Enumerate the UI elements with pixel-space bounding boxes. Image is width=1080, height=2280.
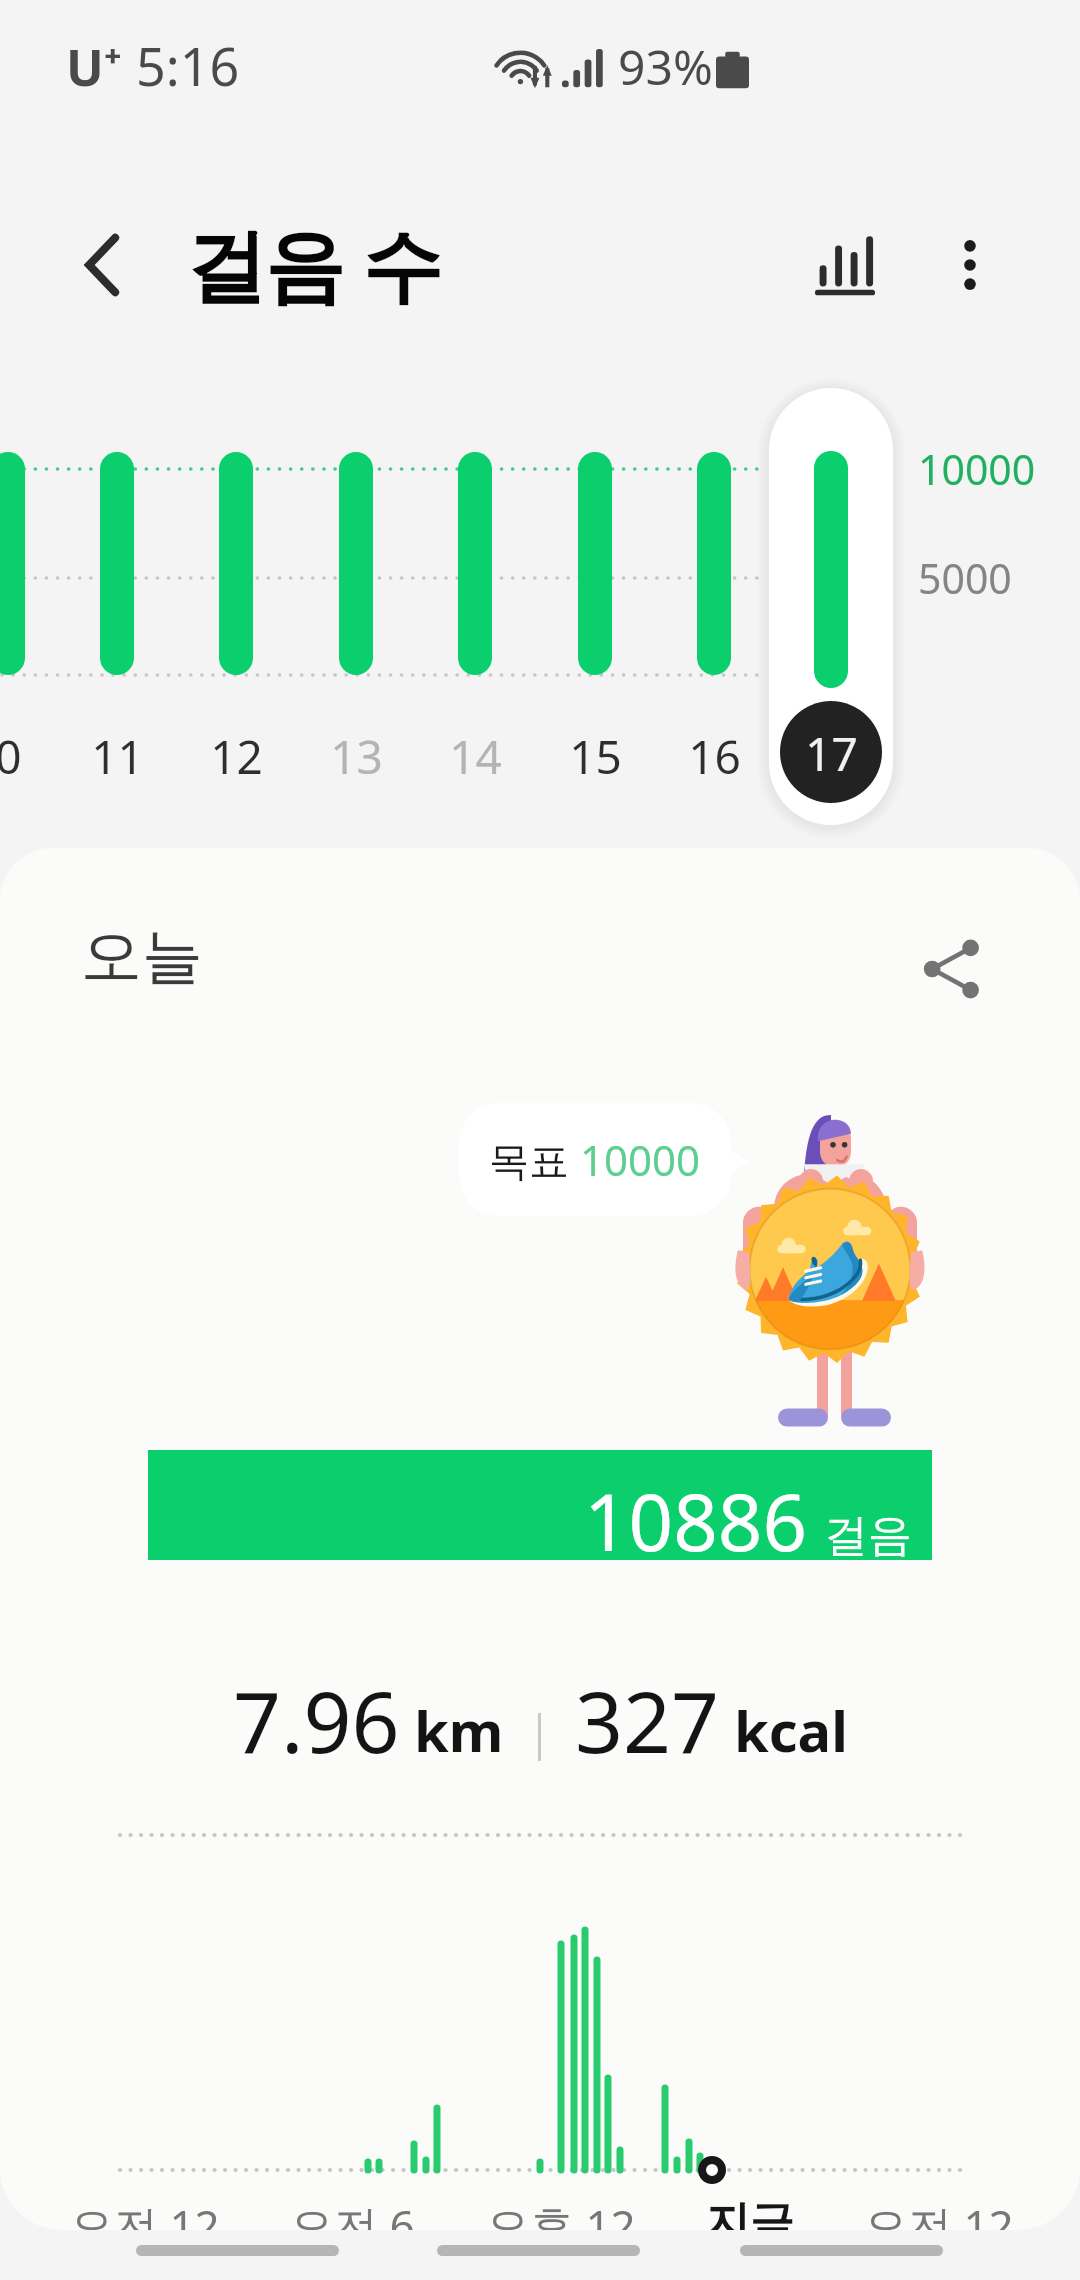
button[interactable]: 0 xyxy=(0,440,64,790)
staticText: 93% xyxy=(618,34,713,99)
staticText: 오전 12 xyxy=(70,2195,220,2230)
staticText: 0 xyxy=(0,725,22,788)
staticText: 지금 xyxy=(706,2195,794,2230)
staticText: 오전 6 xyxy=(290,2195,415,2230)
staticText: 17 xyxy=(805,722,858,785)
staticText: 14 xyxy=(449,725,502,788)
button[interactable]: 15 xyxy=(539,440,651,790)
button[interactable]: 11 xyxy=(61,440,173,790)
staticText: kcal xyxy=(734,1692,848,1768)
staticText: U⁺ xyxy=(66,33,122,101)
button[interactable]: Home xyxy=(407,2220,670,2280)
staticText: 목표 xyxy=(489,1132,580,1187)
button[interactable]: 17 xyxy=(769,388,893,825)
button[interactable]: Back xyxy=(710,2220,973,2280)
button[interactable]: 14 xyxy=(419,440,531,790)
staticText: 걸음 수 xyxy=(186,208,441,317)
staticText: 오늘 xyxy=(81,918,203,995)
staticText: 15 xyxy=(569,725,622,788)
button[interactable]: 16 xyxy=(658,440,770,790)
staticText: 오후 12 xyxy=(486,2195,636,2230)
staticText: 7.96 xyxy=(233,1663,400,1777)
button[interactable]: Chart view xyxy=(786,204,906,324)
staticText: 5000 xyxy=(918,550,1012,606)
staticText: 5:16 xyxy=(136,30,240,101)
button[interactable]: 13 xyxy=(300,440,412,790)
staticText: 10000 xyxy=(580,1131,701,1188)
staticText: 327 xyxy=(575,1663,720,1777)
staticText: 13 xyxy=(330,725,383,788)
staticText: 10000 xyxy=(918,441,1036,497)
button[interactable]: More options xyxy=(910,205,1030,325)
staticText: 11 xyxy=(91,725,144,788)
button[interactable]: 10886 xyxy=(148,1450,932,1560)
staticText: 걸음 xyxy=(824,1508,912,1563)
staticText: 16 xyxy=(688,725,741,788)
button[interactable]: Share xyxy=(892,909,1012,1029)
button[interactable]: Back xyxy=(44,205,164,325)
staticText: 오전 12 xyxy=(864,2195,1014,2230)
staticText: km xyxy=(414,1692,504,1768)
button[interactable]: 12 xyxy=(180,440,292,790)
button[interactable]: Recents xyxy=(106,2220,369,2280)
staticText: 10886 xyxy=(584,1468,808,1574)
button[interactable]: 걸음 수 xyxy=(186,202,441,322)
staticText: 12 xyxy=(210,725,263,788)
